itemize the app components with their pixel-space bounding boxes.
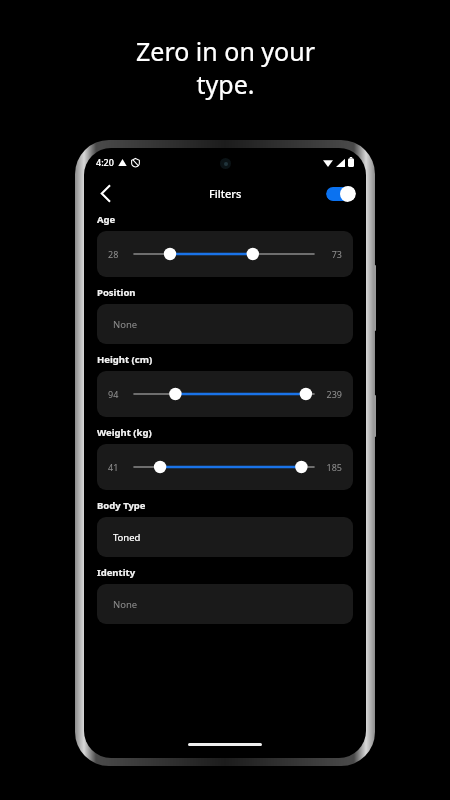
staticText: Height (cm) [97, 353, 153, 366]
button[interactable]: 94 [97, 371, 353, 417]
button[interactable]: 28 [97, 231, 353, 277]
button[interactable]: None [97, 304, 353, 344]
staticText: Position [97, 286, 136, 299]
button[interactable]: 41 [97, 444, 353, 490]
button[interactable]: None [97, 584, 353, 624]
staticText: Age [97, 213, 116, 226]
staticText: 185 [318, 461, 342, 473]
staticText: Body Type [97, 499, 146, 512]
staticText: 4:20 [96, 156, 114, 168]
staticText: 239 [318, 388, 342, 400]
button[interactable]: Filters enabled toggle [326, 185, 356, 202]
staticText: None [113, 598, 138, 611]
staticText: 28 [108, 248, 119, 260]
staticText: Zero in on your type. [136, 34, 315, 101]
staticText: 94 [108, 388, 119, 400]
staticText: 41 [108, 461, 119, 473]
staticText: Toned [113, 531, 141, 544]
button[interactable]: Toned [97, 517, 353, 557]
staticText: Weight (kg) [97, 426, 152, 439]
staticText: Identity [97, 566, 136, 579]
staticText: None [113, 318, 138, 331]
staticText: 73 [318, 248, 342, 260]
button[interactable]: Back [90, 178, 120, 208]
staticText: Filters [209, 186, 242, 201]
